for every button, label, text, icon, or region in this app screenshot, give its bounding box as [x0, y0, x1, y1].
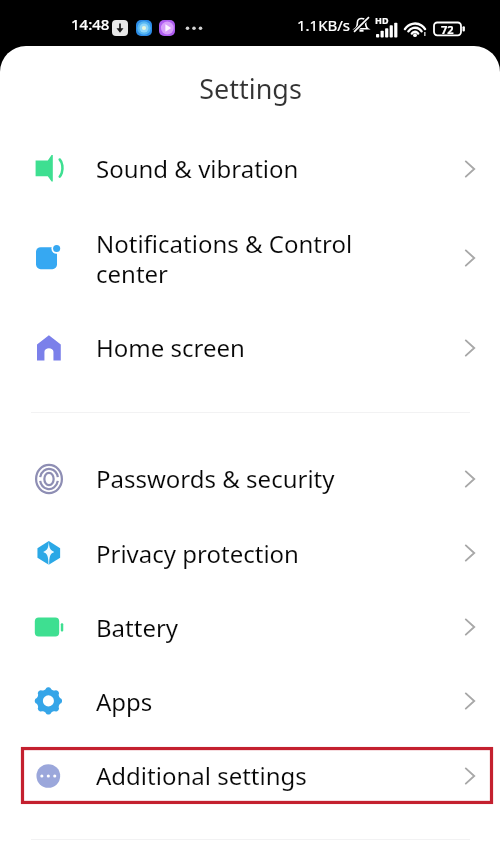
staticText: Settings [199, 70, 302, 107]
staticText: Privacy protection [96, 537, 361, 570]
button[interactable]: Sound & vibration [0, 131, 500, 206]
staticText: Apps [96, 685, 361, 718]
staticText: 1.1KB/s [297, 15, 350, 35]
button[interactable]: Battery [0, 590, 500, 664]
staticText: Sound & vibration [96, 152, 361, 185]
staticText: Home screen [96, 331, 361, 364]
staticText: Battery [96, 611, 361, 644]
staticText: Notifications & Control center [96, 227, 361, 290]
staticText: 72 [441, 22, 454, 36]
button[interactable]: Notifications & Control center [0, 206, 500, 310]
button[interactable]: Privacy protection [0, 516, 500, 590]
staticText: Additional settings [96, 759, 361, 792]
button[interactable]: Apps [0, 664, 500, 738]
staticText: Passwords & security [96, 462, 361, 495]
button[interactable]: Passwords & security [0, 441, 500, 516]
button[interactable]: Additional settings [0, 738, 500, 813]
staticText: HD [375, 14, 389, 26]
button[interactable]: Home screen [0, 310, 500, 385]
staticText: 14:48 [71, 14, 110, 34]
